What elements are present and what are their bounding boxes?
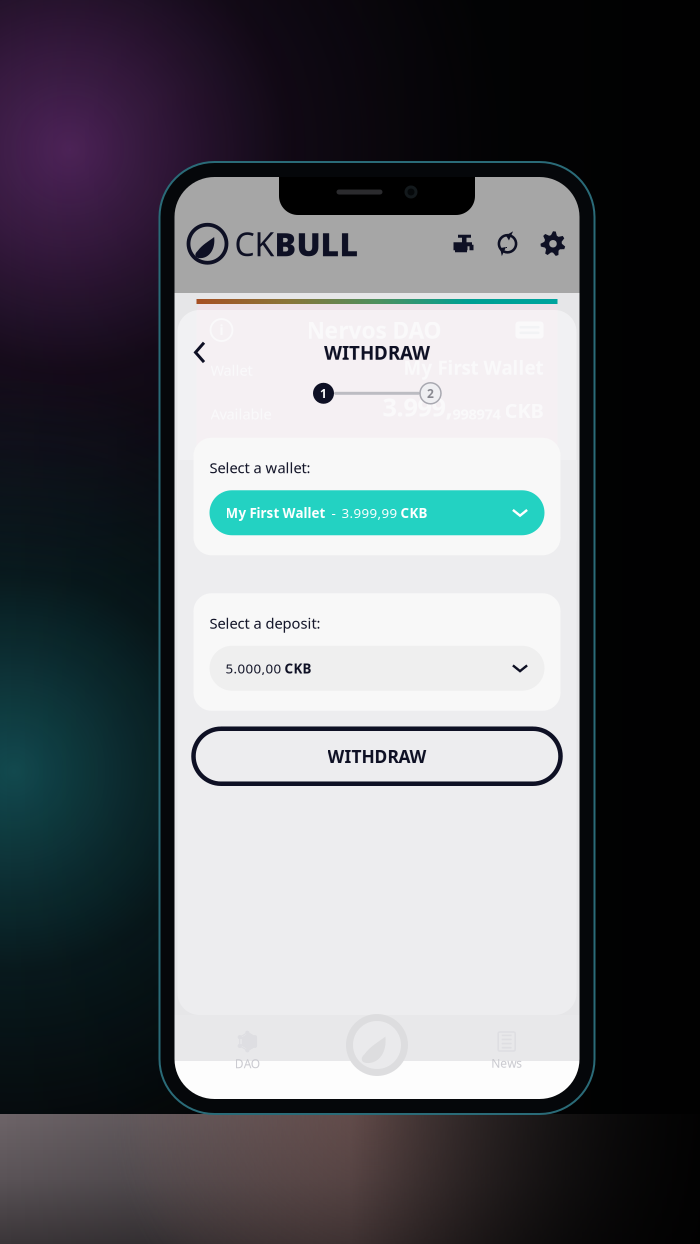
button[interactable]: Faucet bbox=[453, 234, 474, 254]
button[interactable]: DAO bbox=[182, 1030, 312, 1071]
staticText: CKB bbox=[284, 659, 311, 677]
button[interactable]: 5.000,00 bbox=[209, 646, 544, 691]
staticText: BULL bbox=[274, 222, 358, 265]
button[interactable]: News bbox=[442, 1031, 571, 1071]
staticText: My First Wallet bbox=[403, 355, 543, 380]
staticText: 3.999, bbox=[382, 390, 452, 423]
button[interactable]: WITHDRAW bbox=[193, 729, 560, 784]
staticText: Nervos DAO bbox=[306, 315, 441, 345]
staticText: 3.999,99 bbox=[341, 504, 400, 522]
staticText: Select a wallet: bbox=[209, 458, 310, 477]
button[interactable]: My First Wallet bbox=[209, 490, 544, 535]
button[interactable]: Settings bbox=[540, 231, 565, 256]
staticText: 2 bbox=[427, 385, 434, 401]
staticText: WITHDRAW bbox=[324, 340, 430, 365]
staticText: Select a deposit: bbox=[209, 613, 320, 633]
staticText: WITHDRAW bbox=[327, 745, 426, 768]
staticText: - bbox=[325, 504, 341, 522]
staticText: News bbox=[491, 1055, 522, 1071]
staticText: DAO bbox=[235, 1055, 260, 1071]
staticText: CK bbox=[234, 222, 274, 265]
staticText: My First Wallet bbox=[225, 504, 325, 522]
button[interactable]: Home bbox=[312, 1020, 442, 1082]
button[interactable]: Back bbox=[193, 341, 206, 364]
staticText: Locked bbox=[210, 448, 259, 467]
staticText: CKB bbox=[504, 397, 543, 424]
staticText: i bbox=[219, 321, 223, 339]
staticText: CKB bbox=[400, 504, 427, 522]
staticText: 1 bbox=[320, 385, 327, 401]
button[interactable]: Refresh bbox=[495, 232, 519, 256]
staticText: 998974 bbox=[452, 404, 504, 424]
staticText: 5.000,00 bbox=[225, 659, 284, 677]
